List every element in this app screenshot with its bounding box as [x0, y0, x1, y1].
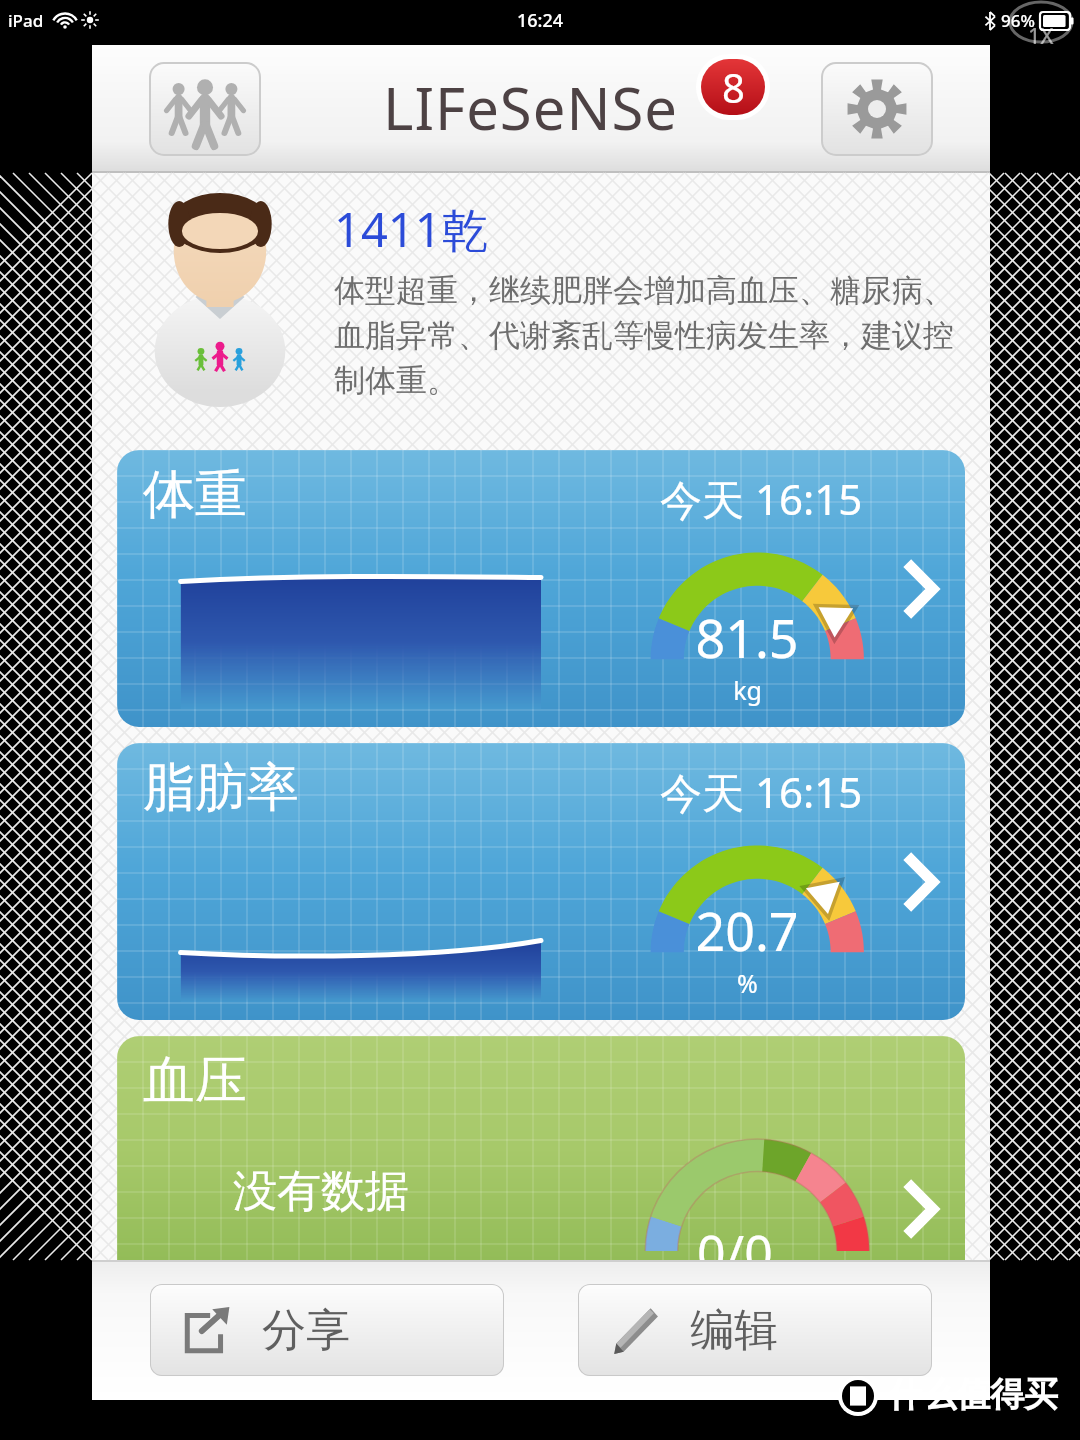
staticText: iPad: [8, 9, 44, 32]
staticText: 分享: [262, 1303, 350, 1358]
staticText: 96%: [1001, 9, 1035, 32]
staticText: 0/0: [697, 1218, 773, 1260]
button[interactable]: 脂肪率: [117, 743, 965, 1020]
button[interactable]: 分享: [150, 1284, 504, 1376]
staticText: 20.7: [695, 895, 799, 966]
staticText: 没有数据: [233, 1164, 409, 1219]
button[interactable]: 血压: [117, 1036, 965, 1260]
staticText: 1411乾: [334, 197, 489, 261]
staticText: 81.5: [695, 602, 799, 673]
staticText: 体重: [143, 462, 247, 528]
staticText: 体型超重，继续肥胖会增加高血压、糖尿病、血脂异常、代谢紊乱等慢性病发生率，建议控…: [334, 271, 972, 400]
staticText: kg: [733, 673, 762, 707]
button[interactable]: 体重: [117, 450, 965, 727]
staticText: 今天 16:15: [660, 470, 863, 527]
staticText: 1X: [1028, 20, 1054, 50]
staticText: %: [737, 966, 758, 1000]
staticText: 脂肪率: [143, 755, 299, 821]
staticText: 16:24: [517, 8, 564, 33]
button[interactable]: Settings: [822, 63, 932, 155]
staticText: 8: [722, 60, 745, 114]
staticText: 今天 16:15: [660, 763, 863, 820]
staticText: 血压: [143, 1048, 247, 1114]
button[interactable]: 编辑: [578, 1284, 932, 1376]
staticText: 编辑: [690, 1303, 778, 1358]
staticText: LIFeSeNSe: [383, 68, 679, 147]
button[interactable]: Friends: [150, 63, 260, 155]
staticText: 什么值得买: [888, 1373, 1058, 1416]
